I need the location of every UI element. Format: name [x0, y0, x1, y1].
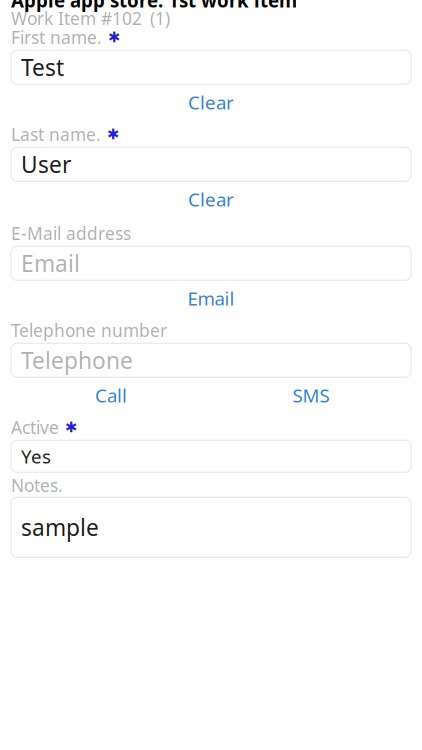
staticText: SMS — [292, 383, 329, 408]
button[interactable]: Clear — [11, 89, 411, 115]
staticText: First name. — [11, 26, 102, 49]
staticText: Work Item #102 — [11, 7, 142, 30]
staticText: Test — [21, 52, 64, 82]
button[interactable]: Yes — [11, 440, 411, 472]
staticText: Telephone number — [11, 319, 167, 342]
button[interactable]: Email — [11, 285, 411, 311]
staticText: Notes. — [11, 474, 63, 497]
staticText: Last name. — [11, 123, 101, 146]
staticText: Apple app store: 1st work item — [11, 0, 297, 13]
button[interactable]: Clear — [11, 186, 411, 212]
staticText: Clear — [188, 90, 234, 115]
staticText: Email — [187, 286, 234, 311]
staticText: Yes — [21, 444, 51, 469]
staticText: (1) — [150, 7, 170, 30]
staticText: ✱ — [108, 29, 120, 45]
button[interactable]: Call — [11, 382, 211, 408]
staticText: Call — [95, 383, 127, 408]
staticText: sample — [21, 512, 99, 542]
staticText: ✱ — [65, 419, 77, 435]
staticText: ✱ — [107, 126, 119, 142]
staticText: Active — [11, 416, 59, 439]
staticText: Clear — [188, 187, 234, 212]
staticText: E-Mail address — [11, 222, 131, 245]
staticText: User — [21, 149, 71, 179]
button[interactable]: SMS — [211, 382, 411, 408]
staticText: Telephone — [21, 345, 133, 375]
staticText: Email — [21, 248, 80, 278]
